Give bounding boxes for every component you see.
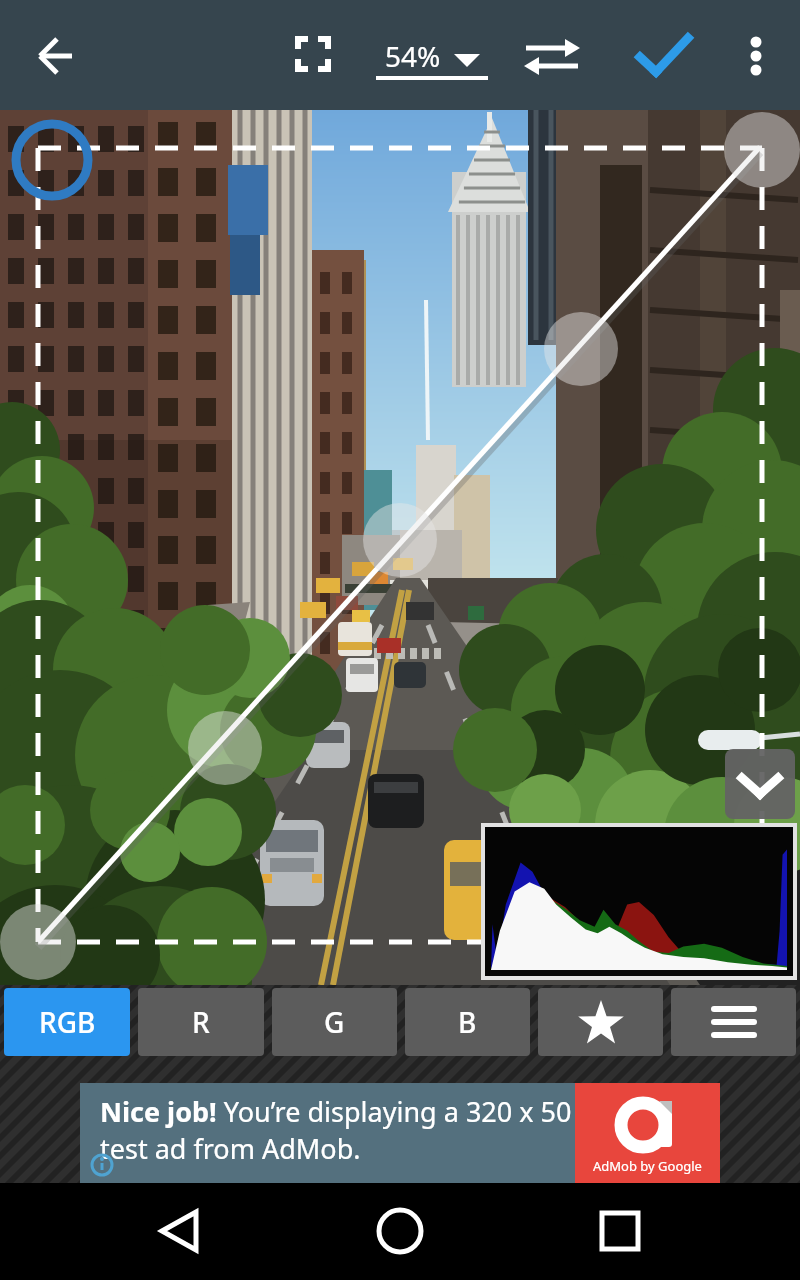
button[interactable] [360, 1191, 440, 1271]
staticText: test ad from AdMob. [100, 1130, 361, 1167]
button[interactable]: G [272, 988, 397, 1056]
button[interactable] [580, 1191, 660, 1271]
button[interactable] [140, 1191, 220, 1271]
staticText: AdMob by Google [593, 1157, 702, 1175]
button[interactable]: B [405, 988, 530, 1056]
staticText: R [192, 1003, 210, 1041]
button[interactable] [538, 988, 663, 1056]
button[interactable] [632, 26, 694, 88]
button[interactable]: RGB [4, 988, 130, 1056]
staticText: RGB [39, 1003, 96, 1041]
button[interactable] [28, 28, 84, 84]
button[interactable]: R [138, 988, 264, 1056]
button[interactable] [522, 30, 582, 90]
button[interactable] [671, 988, 796, 1056]
button[interactable] [732, 26, 780, 86]
button[interactable] [290, 31, 338, 79]
button[interactable]: 54% [374, 28, 490, 86]
staticText: B [458, 1003, 477, 1041]
staticText: Nice job! You’re displaying a 320 x 50 [100, 1093, 572, 1130]
button[interactable] [725, 749, 795, 819]
staticText: 54% [385, 37, 441, 75]
button[interactable]: Nice job! You’re displaying a 320 x 50 [80, 1083, 720, 1183]
staticText: G [324, 1003, 345, 1041]
